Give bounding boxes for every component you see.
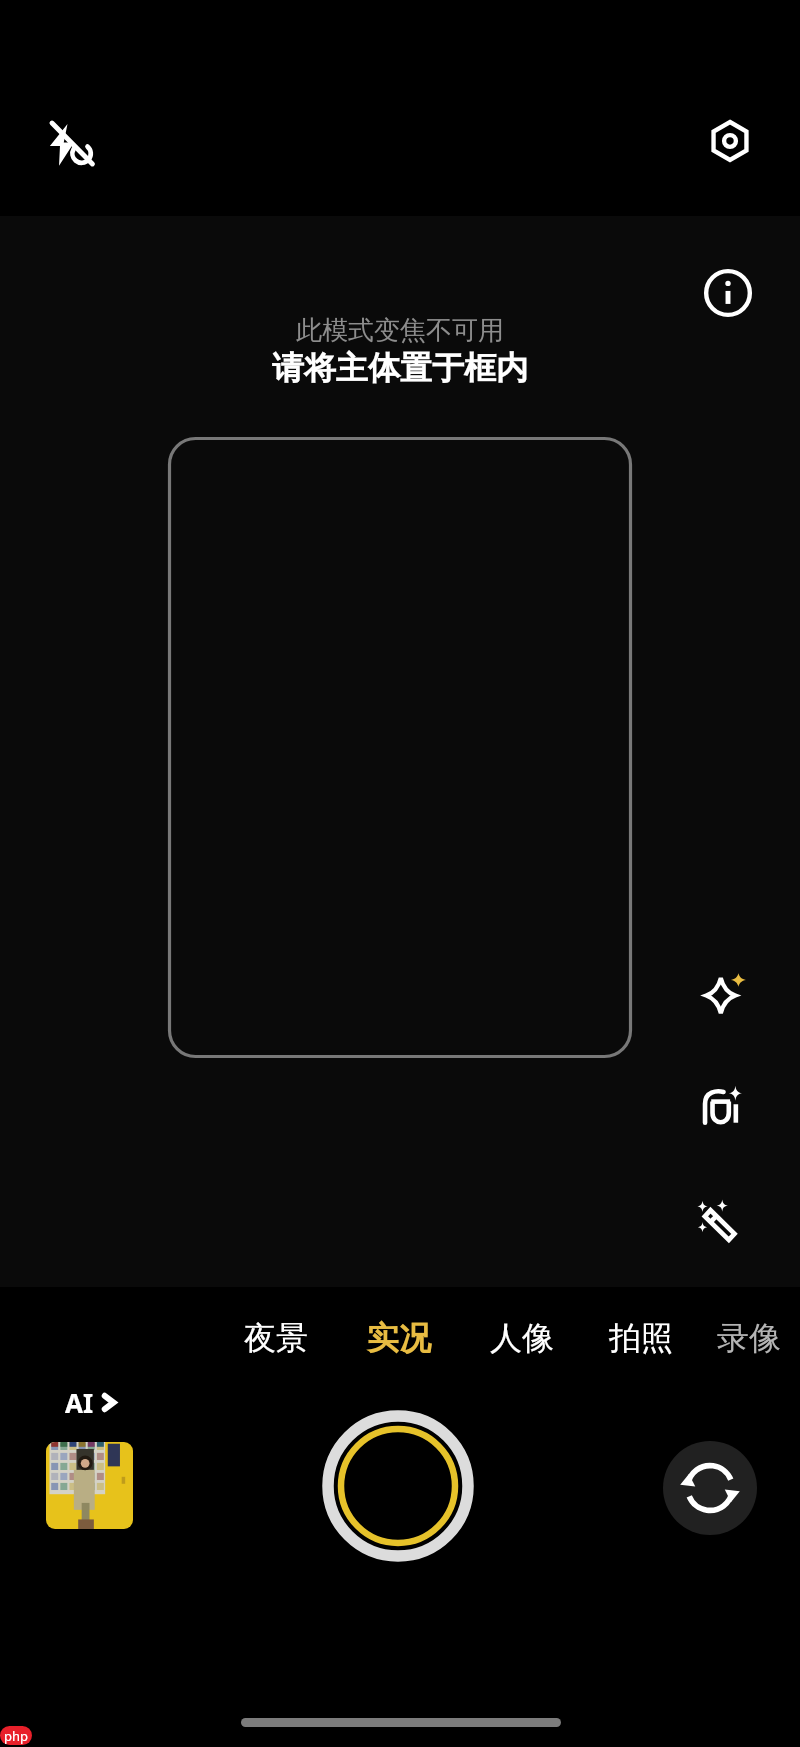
button[interactable]: AI enhance xyxy=(689,957,761,1029)
staticText: 录像 xyxy=(717,1318,781,1358)
staticText: 此模式变焦不可用 xyxy=(296,314,504,347)
button[interactable]: Gallery xyxy=(46,1442,133,1529)
staticText: php xyxy=(4,1727,29,1745)
button[interactable]: Shutter xyxy=(322,1410,474,1562)
button[interactable]: Switch camera xyxy=(663,1441,757,1535)
button[interactable]: Info xyxy=(693,258,763,328)
button[interactable]: Settings xyxy=(694,105,766,177)
staticText: AI xyxy=(65,1385,94,1420)
button[interactable]: 实况 xyxy=(351,1307,447,1369)
button[interactable]: Flash off xyxy=(35,107,107,179)
button[interactable]: Filters xyxy=(682,1185,754,1257)
button[interactable]: 拍照 xyxy=(593,1307,689,1369)
staticText: 实况 xyxy=(367,1318,431,1358)
staticText: 拍照 xyxy=(609,1318,673,1358)
button[interactable]: 录像 xyxy=(701,1307,797,1369)
button[interactable]: 夜景 xyxy=(228,1307,324,1369)
button[interactable]: 人像 xyxy=(474,1307,570,1369)
staticText: 夜景 xyxy=(244,1318,308,1358)
staticText: 人像 xyxy=(490,1318,554,1358)
button[interactable]: AI xyxy=(61,1381,123,1424)
staticText: 请将主体置于框内 xyxy=(272,348,528,388)
button[interactable]: Beauty xyxy=(684,1070,756,1142)
